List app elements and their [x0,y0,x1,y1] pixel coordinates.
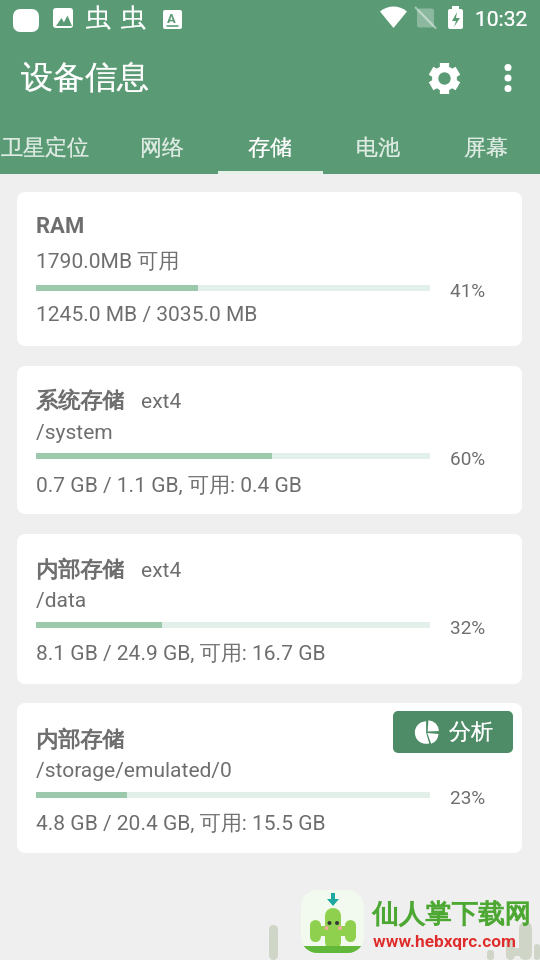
staticText: 23% [450,786,486,808]
staticText: ext4 [141,558,182,583]
staticText: 内部存储 [36,726,124,754]
staticText: A [167,11,176,26]
button[interactable]: More options [484,54,532,102]
button[interactable]: 分析 [393,711,513,753]
staticText: 60% [450,447,486,469]
button[interactable]: RAM [17,192,522,346]
button[interactable]: 系统存储 [17,366,522,514]
button[interactable]: 卫星定位 [0,122,97,174]
staticText: www.hebxqrc.com [373,931,517,951]
staticText: /data [36,588,87,613]
staticText: 存储 [248,134,292,162]
staticText: /storage/emulated/0 [36,758,232,783]
staticText: 系统存储 [36,387,124,415]
button[interactable]: 内部存储 [17,703,522,853]
staticText: RAM [36,213,85,239]
staticText: /system [36,420,113,445]
staticText: 41% [450,279,486,301]
staticText: 虫 [86,2,111,33]
staticText: 网络 [140,134,184,162]
staticText: 卫星定位 [1,134,89,162]
staticText: 4.8 GB / 20.4 GB, 可用: 15.5 GB [36,810,326,836]
staticText: 屏幕 [464,134,508,162]
staticText: 1245.0 MB / 3035.0 MB [36,302,258,327]
staticText: 电池 [356,134,400,162]
staticText: 0.7 GB / 1.1 GB, 可用: 0.4 GB [36,472,302,498]
staticText: 8.1 GB / 24.9 GB, 可用: 16.7 GB [36,640,326,666]
staticText: 32% [450,616,486,638]
button[interactable]: 电池 [324,122,432,174]
staticText: 虫 [121,2,146,33]
staticText: ext4 [141,389,182,414]
staticText: 仙人掌下载网 [372,897,531,930]
button[interactable]: 网络 [108,122,216,174]
button[interactable]: Settings [420,54,468,102]
staticText: 10:32 [475,7,528,32]
button[interactable]: 内部存储 [17,534,522,684]
staticText: 内部存储 [36,556,124,584]
staticText: 1790.0MB 可用 [36,248,180,274]
staticText: 分析 [449,718,493,746]
staticText: 设备信息 [21,57,149,97]
button[interactable]: 存储 [216,122,324,174]
button[interactable]: 屏幕 [432,122,540,174]
